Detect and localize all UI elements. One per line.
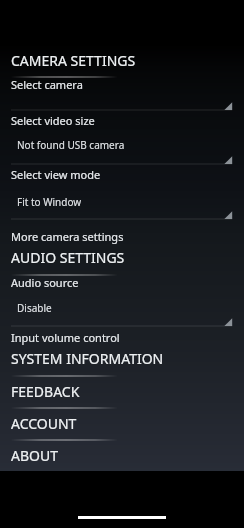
staticText: ABOUT: [11, 446, 58, 465]
staticText: SYSTEM INFORMATION: [11, 349, 164, 368]
button[interactable]: ABOUT: [0, 441, 244, 473]
button[interactable]: Input volume control: [0, 324, 244, 346]
staticText: FEEDBACK: [11, 382, 80, 401]
staticText: Disable: [17, 301, 52, 315]
button[interactable]: ACCOUNT: [0, 408, 244, 441]
staticText: Select video size: [11, 113, 95, 128]
staticText: AUDIO SETTINGS: [11, 248, 125, 267]
button[interactable]: Select video size: [0, 110, 244, 164]
staticText: ACCOUNT: [11, 414, 77, 433]
button[interactable]: Audio source: [0, 274, 244, 324]
staticText: Fit to Window: [17, 195, 82, 209]
staticText: Audio source: [11, 275, 79, 290]
button[interactable]: CAMERA SETTINGS: [0, 48, 244, 77]
button[interactable]: FEEDBACK: [0, 377, 244, 407]
staticText: Select camera: [11, 77, 83, 92]
staticText: CAMERA SETTINGS: [11, 51, 136, 70]
button[interactable]: Select view mode: [0, 164, 244, 219]
button[interactable]: More camera settings: [0, 219, 244, 245]
staticText: More camera settings: [11, 229, 124, 244]
staticText: Input volume control: [11, 330, 120, 345]
button[interactable]: Select camera: [0, 77, 244, 110]
button[interactable]: SYSTEM INFORMATION: [0, 346, 244, 376]
staticText: Select view mode: [11, 167, 101, 182]
staticText: Not found USB camera: [17, 138, 125, 152]
button[interactable]: AUDIO SETTINGS: [0, 245, 244, 274]
